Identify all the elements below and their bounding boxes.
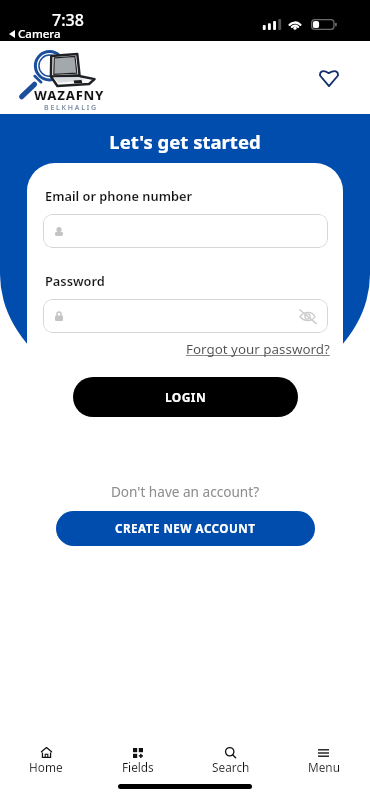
- staticText: Forgot your password?: [186, 340, 330, 358]
- staticText: BELKHALIG: [44, 103, 98, 113]
- button[interactable]: CREATE NEW ACCOUNT: [56, 511, 315, 546]
- button[interactable]: LOGIN: [73, 377, 298, 417]
- staticText: Home: [29, 759, 63, 775]
- staticText: CREATE NEW ACCOUNT: [115, 521, 256, 537]
- button[interactable]: Menu: [277, 747, 370, 775]
- button[interactable]: Show password: [43, 299, 328, 333]
- staticText: Fields: [122, 759, 154, 775]
- staticText: Camera: [18, 26, 61, 42]
- staticText: Don't have an account?: [0, 482, 370, 501]
- staticText: Email or phone number: [45, 187, 192, 204]
- button[interactable]: [43, 214, 328, 248]
- staticText: Menu: [308, 759, 340, 775]
- other: Show password: [299, 308, 317, 325]
- button[interactable]: Search: [184, 747, 277, 775]
- button[interactable]: Home: [0, 747, 92, 775]
- staticText: LOGIN: [165, 389, 207, 405]
- staticText: 7:38: [52, 9, 84, 31]
- staticText: Let's get started: [0, 129, 370, 154]
- staticText: Password: [45, 272, 105, 289]
- button[interactable]: Forgot your password?: [186, 340, 330, 358]
- button[interactable]: Favorites: [310, 61, 347, 94]
- staticText: WAZAFNY: [34, 86, 105, 104]
- staticText: Search: [212, 759, 250, 775]
- button[interactable]: Fields: [92, 747, 184, 775]
